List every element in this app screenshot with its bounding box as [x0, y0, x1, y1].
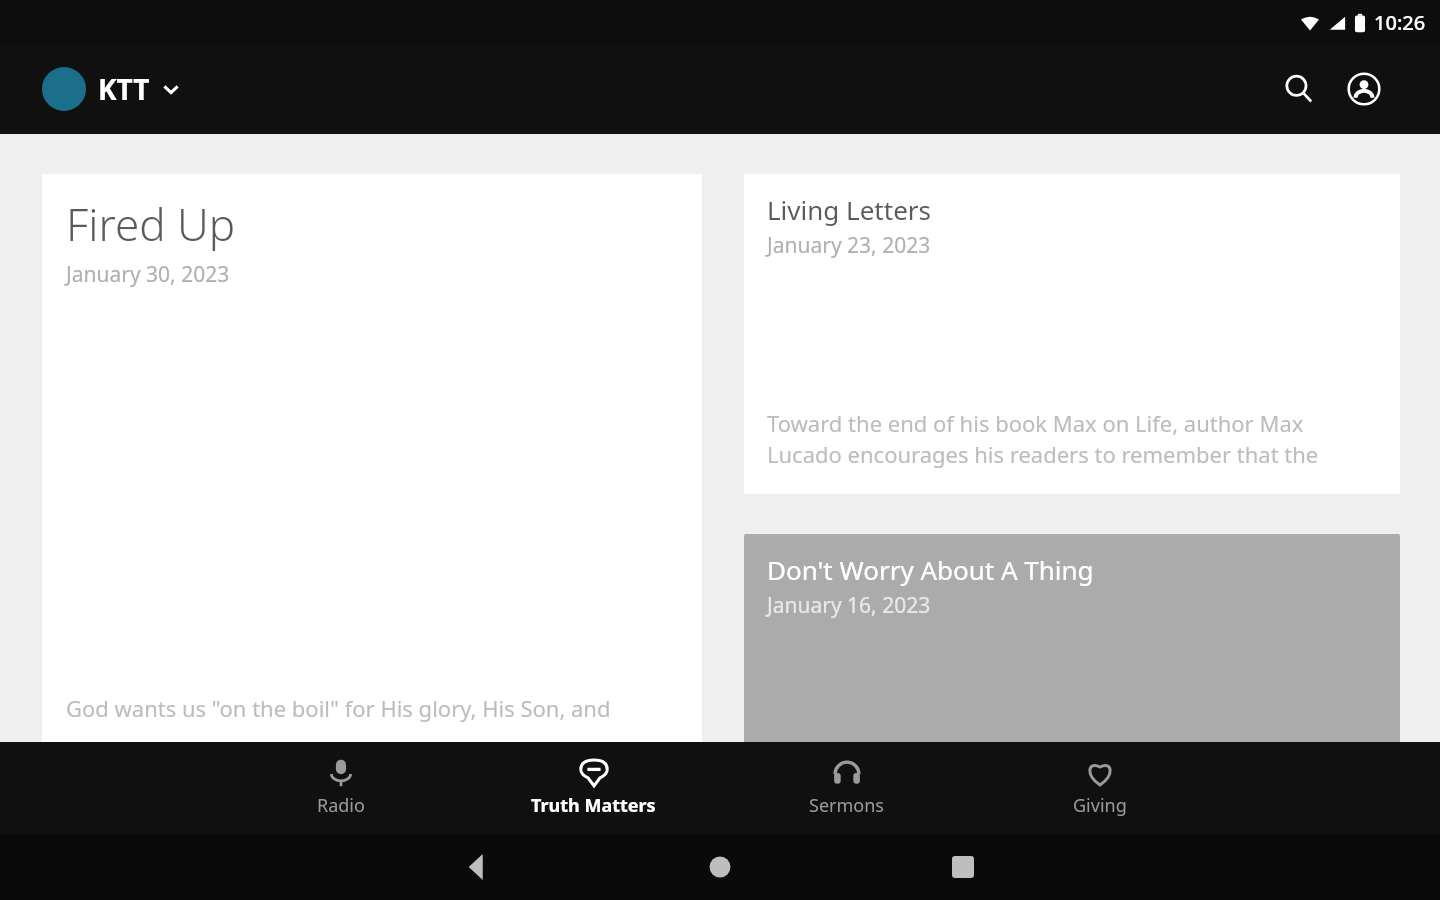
button[interactable]: Living Letters: [744, 174, 1400, 494]
staticText: Fired Up: [66, 194, 236, 254]
staticText: God wants us "on the boil" for His glory…: [66, 693, 678, 726]
staticText: Living Letters: [767, 192, 931, 227]
button[interactable]: Sermons: [720, 742, 973, 834]
staticText: Toward the end of his book Max on Life, …: [767, 408, 1377, 470]
button[interactable]: KTT: [42, 67, 182, 111]
staticText: January 23, 2023: [767, 231, 931, 260]
staticText: 10:26: [1374, 9, 1426, 36]
button[interactable]: Radio: [214, 742, 467, 834]
staticText: Radio: [317, 793, 365, 818]
button[interactable]: Giving: [973, 742, 1226, 834]
button[interactable]: Fired Up: [42, 174, 702, 746]
button[interactable]: Don't Worry About A Thing: [744, 534, 1400, 746]
staticText: KTT: [98, 70, 150, 108]
button[interactable]: Truth Matters: [467, 742, 720, 834]
staticText: January 16, 2023: [767, 591, 931, 620]
button[interactable]: Account: [1338, 63, 1390, 115]
button[interactable]: Recents: [933, 837, 993, 897]
button[interactable]: Back: [447, 837, 507, 897]
button[interactable]: Home: [690, 837, 750, 897]
staticText: January 30, 2023: [66, 260, 230, 289]
staticText: Sermons: [809, 793, 884, 818]
staticText: Don't Worry About A Thing: [767, 552, 1094, 587]
staticText: Giving: [1073, 793, 1127, 818]
button[interactable]: Search: [1273, 63, 1325, 115]
staticText: Truth Matters: [531, 793, 656, 818]
